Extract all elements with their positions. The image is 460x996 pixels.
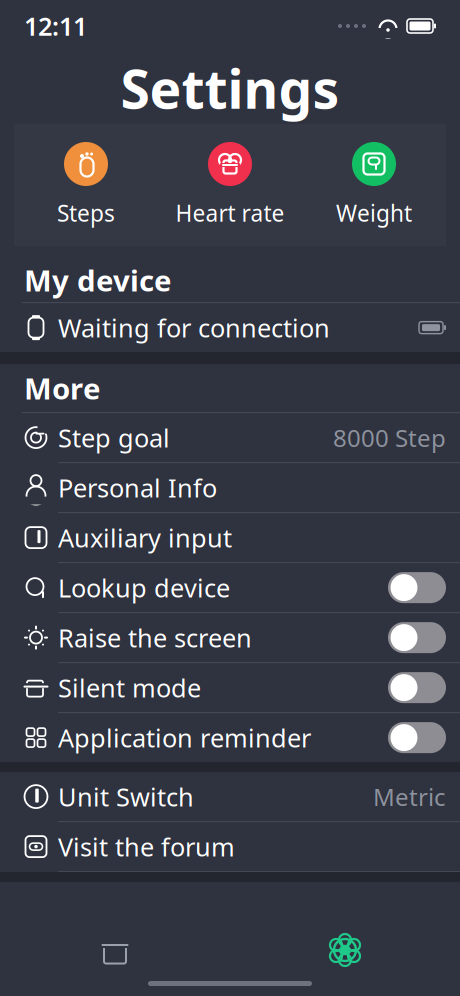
- staticText: Metric: [373, 781, 446, 813]
- button[interactable]: Weight: [302, 142, 446, 228]
- button[interactable]: Settings: [230, 922, 460, 978]
- button[interactable]: Heart rate: [158, 142, 302, 228]
- staticText: Personal Info: [58, 471, 217, 504]
- button[interactable]: Waiting for connection: [0, 303, 460, 352]
- staticText: Auxiliary input: [58, 521, 232, 554]
- staticText: Lookup device: [58, 571, 230, 604]
- button[interactable]: Personal Info: [0, 463, 460, 513]
- staticText: Settings: [120, 53, 339, 123]
- button[interactable]: Visit the forum: [0, 822, 460, 872]
- staticText: Raise the screen: [58, 621, 252, 654]
- button[interactable]: Lookup device: [0, 563, 460, 613]
- button[interactable]: Auxiliary input: [0, 513, 460, 563]
- staticText: Steps: [57, 198, 115, 228]
- button[interactable]: Home: [0, 922, 230, 978]
- button[interactable]: Raise the screen: [0, 613, 460, 663]
- staticText: Step goal: [58, 421, 170, 454]
- staticText: Unit Switch: [58, 780, 194, 813]
- button[interactable]: Silent mode: [0, 663, 460, 713]
- staticText: Visit the forum: [58, 830, 235, 863]
- staticText: 12:11: [24, 9, 87, 43]
- staticText: Waiting for connection: [58, 311, 330, 344]
- staticText: Application reminder: [58, 721, 311, 754]
- button[interactable]: Steps: [14, 142, 158, 228]
- button[interactable]: Unit Switch: [0, 772, 460, 822]
- button[interactable]: Step goal: [0, 413, 460, 463]
- staticText: My device: [24, 261, 172, 300]
- staticText: More: [24, 369, 101, 408]
- staticText: Heart rate: [175, 198, 284, 228]
- staticText: Silent mode: [58, 671, 201, 704]
- staticText: Weight: [336, 198, 412, 228]
- button[interactable]: Application reminder: [0, 713, 460, 762]
- staticText: 8000 Step: [333, 422, 446, 454]
